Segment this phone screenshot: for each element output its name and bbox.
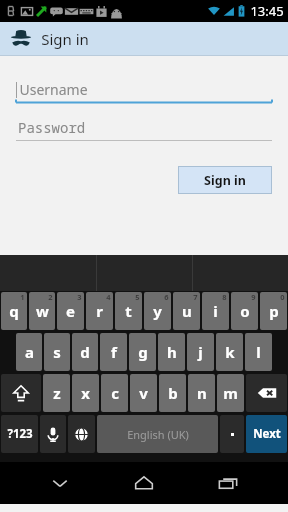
- staticText: ?123: [7, 426, 33, 442]
- staticText: English (UK): [127, 427, 189, 442]
- staticText: v: [139, 383, 148, 403]
- button[interactable]: Backspace: [246, 374, 287, 412]
- button[interactable]: d: [72, 333, 98, 371]
- button[interactable]: [220, 415, 244, 453]
- staticText: m: [223, 383, 238, 403]
- button[interactable]: n: [188, 374, 215, 412]
- button[interactable]: Sign in: [178, 166, 272, 194]
- staticText: 8: [222, 292, 227, 302]
- staticText: e: [66, 301, 75, 321]
- button[interactable]: Shift: [1, 374, 41, 412]
- staticText: l: [256, 342, 261, 362]
- button[interactable]: x: [72, 374, 99, 412]
- staticText: u: [182, 301, 192, 321]
- staticText: 4: [106, 292, 111, 302]
- button[interactable]: v: [130, 374, 157, 412]
- staticText: d: [80, 342, 90, 362]
- button[interactable]: f: [100, 333, 127, 371]
- staticText: 13:45: [250, 2, 284, 20]
- staticText: Username: [19, 80, 88, 99]
- staticText: 0: [280, 292, 285, 302]
- button[interactable]: s: [44, 333, 70, 371]
- staticText: y: [153, 301, 162, 321]
- staticText: f: [111, 342, 117, 362]
- staticText: s: [53, 342, 61, 362]
- staticText: t: [125, 301, 132, 321]
- staticText: a: [25, 342, 34, 362]
- staticText: 1: [20, 292, 25, 302]
- staticText: r: [96, 301, 103, 321]
- staticText: Sign in: [41, 29, 89, 49]
- staticText: h: [167, 342, 177, 362]
- button[interactable]: w: [29, 292, 55, 330]
- button[interactable]: Home: [120, 462, 168, 504]
- staticText: z: [53, 383, 61, 403]
- staticText: p: [269, 301, 279, 321]
- staticText: 5: [135, 292, 140, 302]
- staticText: w: [36, 301, 49, 321]
- button[interactable]: App icon: [0, 22, 288, 55]
- staticText: x: [81, 383, 90, 403]
- staticText: j: [198, 342, 203, 362]
- staticText: g: [138, 342, 148, 362]
- button[interactable]: q: [1, 292, 27, 330]
- button[interactable]: c: [101, 374, 128, 412]
- button[interactable]: ?123: [1, 415, 38, 453]
- staticText: 7: [193, 292, 198, 302]
- staticText: Password: [18, 118, 86, 137]
- button[interactable]: Next: [246, 415, 287, 453]
- button[interactable]: j: [187, 333, 214, 371]
- button[interactable]: Voice input: [40, 415, 66, 453]
- staticText: o: [240, 301, 250, 321]
- button[interactable]: t: [115, 292, 142, 330]
- button[interactable]: Username: [0, 74, 288, 104]
- staticText: Next: [253, 426, 281, 442]
- staticText: 6: [164, 292, 169, 302]
- button[interactable]: m: [217, 374, 244, 412]
- button[interactable]: h: [158, 333, 185, 371]
- staticText: 9: [251, 292, 256, 302]
- staticText: n: [197, 383, 207, 403]
- other: App icon: [10, 28, 32, 50]
- button[interactable]: Password: [0, 112, 288, 142]
- staticText: Sign in: [204, 172, 246, 189]
- button[interactable]: o: [231, 292, 258, 330]
- button[interactable]: u: [173, 292, 200, 330]
- button[interactable]: b: [159, 374, 186, 412]
- button[interactable]: Change language: [68, 415, 95, 453]
- button[interactable]: p: [260, 292, 287, 330]
- staticText: k: [225, 342, 235, 362]
- button[interactable]: y: [144, 292, 171, 330]
- button[interactable]: English (UK): [97, 415, 218, 453]
- staticText: c: [111, 383, 119, 403]
- button[interactable]: k: [216, 333, 243, 371]
- button[interactable]: a: [16, 333, 42, 371]
- button[interactable]: i: [202, 292, 229, 330]
- staticText: q: [9, 301, 19, 321]
- button[interactable]: g: [129, 333, 156, 371]
- staticText: 3: [77, 292, 82, 302]
- staticText: i: [213, 301, 218, 321]
- staticText: b: [168, 383, 178, 403]
- button[interactable]: l: [245, 333, 272, 371]
- button[interactable]: e: [57, 292, 84, 330]
- button[interactable]: Recent apps: [204, 462, 252, 504]
- staticText: 2: [48, 292, 53, 302]
- button[interactable]: z: [43, 374, 70, 412]
- button[interactable]: r: [86, 292, 113, 330]
- button[interactable]: Back: [36, 462, 84, 504]
